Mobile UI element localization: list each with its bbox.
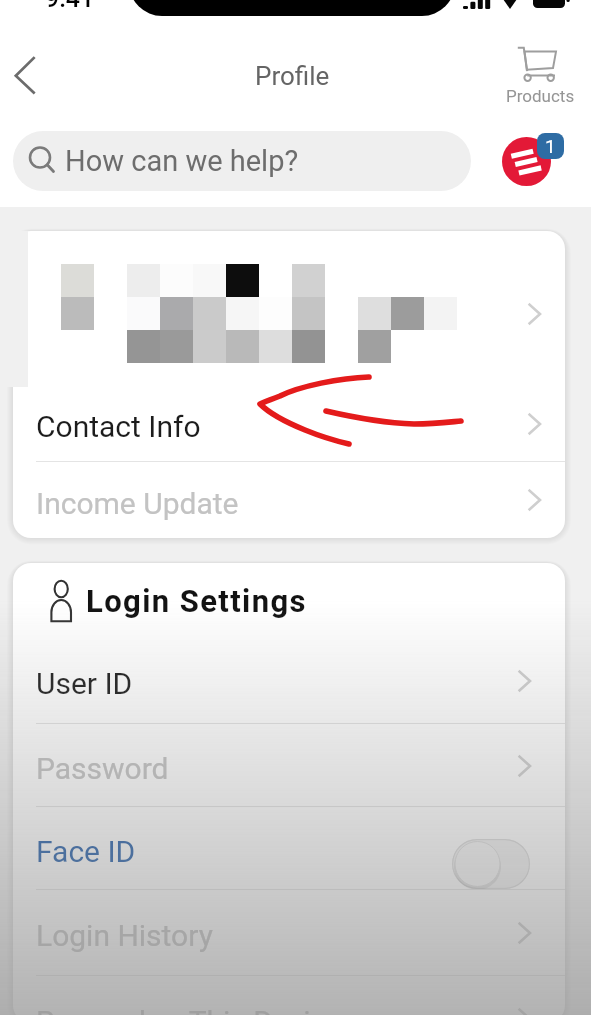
staticText: Remember This Device xyxy=(36,1004,343,1015)
button[interactable]: User ID xyxy=(13,638,565,723)
staticText: 9:41 xyxy=(45,0,95,13)
staticText: Products xyxy=(506,86,575,106)
button[interactable]: Password xyxy=(13,724,565,807)
staticText: Password xyxy=(36,751,169,786)
button[interactable]: Live chat xyxy=(502,137,551,186)
staticText: How can we help? xyxy=(65,144,299,178)
staticText: Login History xyxy=(36,918,213,953)
staticText: Login Settings xyxy=(86,583,307,619)
button[interactable]: Back xyxy=(2,51,48,101)
button[interactable]: Login Settings xyxy=(13,563,565,638)
button[interactable]: Face ID toggle xyxy=(452,839,530,889)
button[interactable]: Products xyxy=(500,42,576,108)
staticText: Profile xyxy=(255,61,330,91)
staticText: 1 xyxy=(545,135,556,157)
staticText: User ID xyxy=(36,666,133,701)
button[interactable]: How can we help? xyxy=(13,131,471,191)
button[interactable]: Income Update xyxy=(13,462,565,538)
button[interactable]: Face ID xyxy=(13,807,565,889)
staticText: Face ID xyxy=(36,834,136,869)
staticText: Income Update xyxy=(36,486,239,521)
button[interactable]: Contact Info xyxy=(13,386,565,461)
button[interactable]: Login History xyxy=(13,890,565,975)
staticText: Contact Info xyxy=(36,409,201,444)
